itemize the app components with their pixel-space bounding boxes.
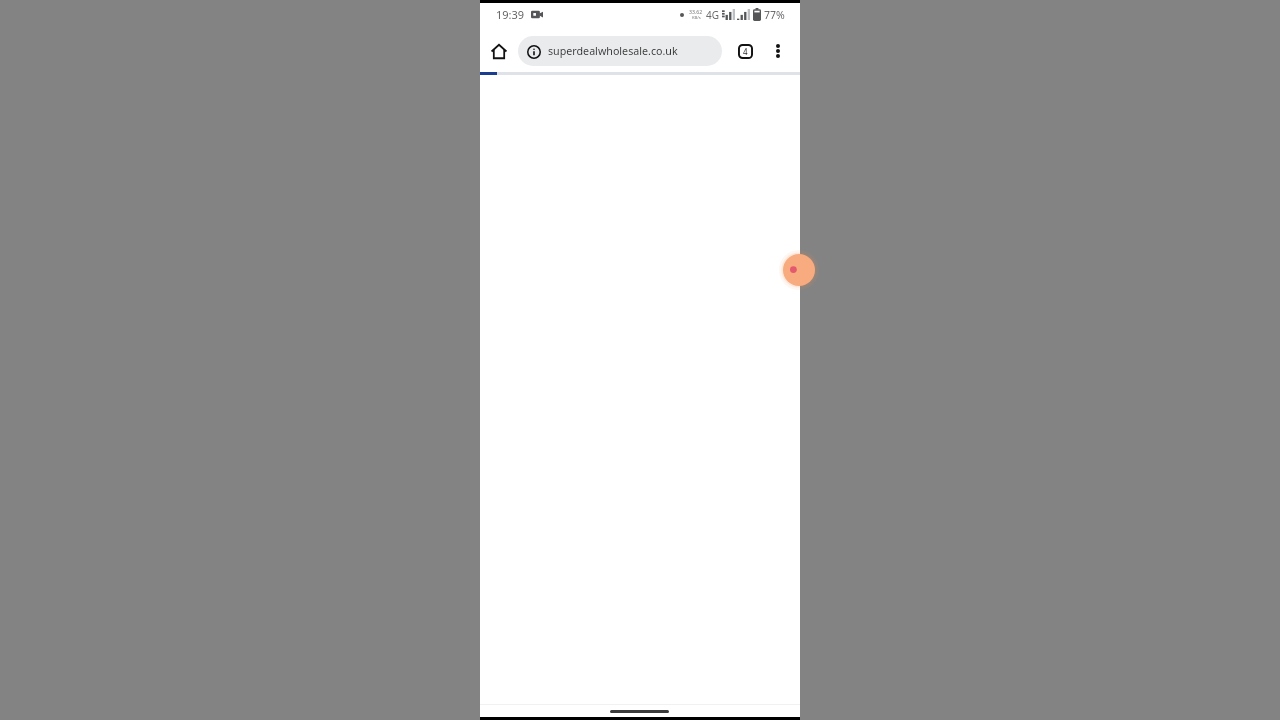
staticText: 4G [706, 8, 719, 22]
button[interactable]: superdealwholesale.co.uk [518, 36, 722, 66]
button[interactable]: Floating chat bubble [779, 250, 819, 290]
button[interactable]: Switch tabs, 4 open [732, 37, 760, 65]
staticText: 77% [764, 8, 785, 22]
staticText: 19:39 [496, 7, 525, 22]
button[interactable]: Home [486, 38, 512, 64]
staticText: 4 [743, 46, 748, 57]
staticText: 33.62 [689, 8, 703, 15]
staticText: KB/s [692, 15, 701, 21]
button[interactable]: More options [764, 37, 792, 65]
staticText: superdealwholesale.co.uk [548, 44, 678, 59]
